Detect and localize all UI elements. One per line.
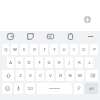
staticText: L (88, 60, 91, 66)
button[interactable]: R (30, 44, 38, 55)
button[interactable]: GIF (40, 31, 60, 42)
button[interactable]: I (70, 44, 78, 55)
button[interactable]: H (55, 57, 63, 68)
button[interactable]: U (60, 44, 68, 55)
button[interactable]: Y (50, 44, 58, 55)
staticText: G (47, 60, 51, 66)
staticText: T (43, 47, 46, 53)
button[interactable]: T (40, 44, 48, 55)
staticText: W (13, 47, 17, 53)
staticText: C (39, 73, 42, 79)
button[interactable]: More options (80, 31, 100, 42)
button[interactable]: J (65, 57, 73, 68)
staticText: R (33, 47, 36, 53)
button[interactable]: G (45, 57, 53, 68)
button[interactable]: Period (74, 83, 83, 94)
button[interactable]: P (90, 44, 98, 55)
staticText: V (49, 73, 52, 79)
staticText: A (9, 60, 12, 66)
staticText: M (78, 73, 82, 79)
staticText: Y (53, 47, 56, 53)
staticText: P (93, 47, 96, 53)
staticText: N (68, 73, 72, 79)
button[interactable]: Clipboard (60, 31, 80, 42)
button[interactable]: W (11, 44, 18, 55)
button[interactable]: D (25, 57, 33, 68)
button[interactable]: A (7, 57, 14, 68)
button[interactable]: Enter (85, 83, 98, 94)
staticText: H (57, 60, 61, 66)
staticText: F (38, 60, 41, 66)
staticText: I (73, 47, 75, 53)
button[interactable]: Emoji (2, 83, 12, 94)
staticText: E (23, 47, 26, 53)
staticText: B (59, 73, 62, 79)
button[interactable]: Stickers (20, 31, 40, 42)
button[interactable]: Voice input (14, 83, 23, 94)
staticText: U (62, 47, 66, 53)
button[interactable]: Scroll to bottom (84, 16, 91, 23)
button[interactable]: C (36, 70, 44, 81)
button[interactable]: L (85, 57, 93, 68)
button[interactable]: F (35, 57, 43, 68)
button[interactable]: B (56, 70, 64, 81)
staticText: J (68, 60, 70, 66)
staticText: S (18, 60, 21, 66)
button[interactable]: Q (2, 44, 9, 55)
button[interactable]: M (76, 70, 84, 81)
button[interactable]: Gboard menu (0, 31, 20, 42)
button[interactable]: K (75, 57, 83, 68)
button[interactable]: Backspace (86, 70, 98, 81)
staticText: D (27, 60, 31, 66)
button[interactable]: E (20, 44, 28, 55)
button[interactable]: N (66, 70, 74, 81)
button[interactable]: S (16, 57, 23, 68)
button[interactable]: O (80, 44, 88, 55)
button[interactable]: Space (37, 83, 72, 94)
button[interactable]: 123 (25, 83, 35, 94)
staticText: Z (19, 73, 22, 79)
staticText: Q (4, 47, 8, 53)
staticText: X (29, 73, 32, 79)
staticText: 123 (27, 87, 33, 91)
button[interactable]: Shift (2, 70, 14, 81)
button[interactable]: V (46, 70, 54, 81)
staticText: O (82, 47, 86, 53)
button[interactable]: Z (16, 70, 24, 81)
staticText: K (78, 60, 81, 66)
button[interactable]: X (26, 70, 34, 81)
